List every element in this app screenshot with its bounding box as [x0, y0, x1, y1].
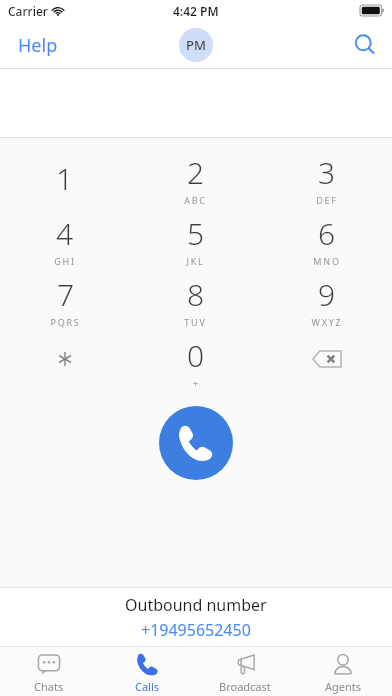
staticText: DEF [316, 194, 338, 206]
staticText: 7 [57, 274, 75, 315]
staticText: TUV [184, 316, 207, 328]
staticText: 2 [187, 152, 205, 193]
button[interactable]: 6 [261, 209, 392, 270]
staticText: Chats [34, 679, 64, 694]
staticText: Help [18, 33, 58, 58]
staticText: JKL [186, 255, 205, 267]
staticText: ABC [184, 194, 207, 206]
staticText: Agents [325, 679, 362, 694]
button[interactable]: PM [179, 28, 213, 62]
staticText: 4 [56, 213, 74, 254]
staticText: Broadcast [219, 679, 271, 694]
button[interactable]: Chats [0, 647, 98, 696]
staticText: 1 [56, 158, 74, 199]
button[interactable]: Call [159, 406, 233, 480]
staticText: 0 [187, 335, 205, 376]
staticText: PM [186, 36, 206, 54]
staticText: 4:42 PM [173, 3, 219, 19]
staticText: Calls [135, 679, 160, 694]
staticText: WXYZ [311, 316, 343, 328]
staticText: GHI [54, 255, 76, 267]
button[interactable]: 1 [0, 148, 130, 209]
staticText: PQRS [50, 316, 81, 328]
staticText: 9 [318, 274, 336, 315]
staticText: +19495652450 [141, 619, 251, 641]
button[interactable]: 7 [0, 270, 130, 331]
staticText: Outbound number [125, 594, 267, 616]
button[interactable]: Delete [261, 331, 392, 392]
button[interactable]: 5 [130, 209, 261, 270]
button[interactable]: Agents [294, 647, 392, 696]
button[interactable]: 3 [261, 148, 392, 209]
button[interactable]: Help [0, 25, 76, 66]
button[interactable]: 4 [0, 209, 130, 270]
staticText: + [193, 377, 200, 389]
button[interactable]: 0 [130, 331, 261, 392]
button[interactable]: 2 [130, 148, 261, 209]
button[interactable]: 8 [130, 270, 261, 331]
button[interactable]: Broadcast [196, 647, 294, 696]
staticText: 8 [187, 274, 205, 315]
button[interactable]: Calls [98, 647, 196, 696]
staticText: 6 [318, 213, 336, 254]
staticText: Carrier [8, 3, 48, 19]
staticText: 5 [187, 213, 205, 254]
button[interactable]: Outbound number [0, 588, 392, 646]
button[interactable]: Search [338, 26, 392, 64]
button[interactable]: Star [0, 331, 130, 392]
staticText: MNO [313, 255, 341, 267]
staticText: 3 [318, 152, 336, 193]
button[interactable]: 9 [261, 270, 392, 331]
